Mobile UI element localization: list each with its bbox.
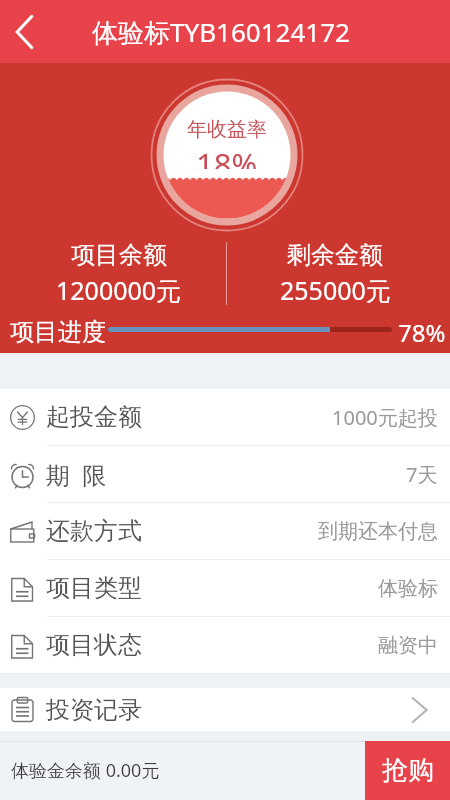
staticText: 起投金额 [46,402,142,432]
staticText: 78% [398,316,446,349]
button[interactable]: Back [1,8,49,56]
staticText: 项目类型 [46,573,142,603]
staticText: 剩余金额 [287,240,383,270]
staticText: 投资记录 [46,695,142,725]
staticText: 7天 [406,461,438,488]
staticText: 255000元 [280,273,391,307]
button[interactable]: 投资记录 [0,688,450,731]
staticText: 项目状态 [46,630,142,660]
staticText: 体验标TYB160124172 [92,14,350,50]
staticText: 项目余额 [71,240,167,270]
button[interactable]: 项目状态 [0,617,450,673]
button[interactable]: 期 限 [0,446,450,502]
staticText: 项目进度 [10,317,106,347]
staticText: 期 限 [46,458,107,491]
button[interactable]: 起投金额 [0,389,450,445]
staticText: 体验标 [378,576,438,601]
staticText: 1200000元 [56,273,182,307]
staticText: 1000元起投 [332,404,438,431]
button[interactable]: 还款方式 [0,503,450,559]
staticText: 还款方式 [46,516,142,546]
staticText: 体验金余额 0.00元 [11,758,160,783]
button[interactable]: 项目类型 [0,560,450,616]
staticText: 18% [196,143,258,169]
staticText: 到期还本付息 [318,519,438,544]
staticText: 抢购 [382,754,434,787]
button[interactable]: 抢购 [365,741,450,800]
staticText: 年收益率 [187,117,267,139]
staticText: 融资中 [378,633,438,658]
